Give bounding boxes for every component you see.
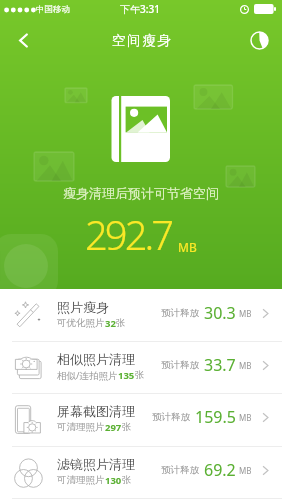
- staticText: 滤镜照片清理: [57, 456, 135, 472]
- staticText: 张: [122, 474, 132, 486]
- staticText: 屏幕截图清理: [57, 403, 135, 419]
- staticText: 可优化照片: [57, 317, 105, 329]
- staticText: 中国移动: [36, 4, 70, 15]
- staticText: 69.2: [204, 459, 236, 481]
- staticText: 张: [135, 369, 145, 381]
- button[interactable]: 相似照片清理: [0, 341, 282, 393]
- button[interactable]: Storage chart: [242, 23, 276, 57]
- staticText: 预计释放: [152, 411, 190, 423]
- staticText: 135: [118, 369, 135, 382]
- button[interactable]: 照片瘦身: [0, 289, 282, 341]
- staticText: 33.7: [204, 354, 236, 376]
- staticText: 159.5: [195, 406, 236, 428]
- staticText: 相似照片清理: [57, 351, 135, 367]
- staticText: 预计释放: [161, 359, 199, 371]
- staticText: MB: [239, 308, 252, 319]
- staticText: 相似/连拍照片: [57, 369, 118, 382]
- staticText: 292.7: [85, 207, 172, 261]
- staticText: MB: [239, 360, 252, 371]
- staticText: 32: [105, 317, 116, 330]
- staticText: MB: [239, 465, 252, 476]
- staticText: 30.3: [204, 302, 236, 324]
- staticText: 张: [116, 317, 126, 329]
- staticText: 可清理照片: [57, 474, 105, 486]
- button[interactable]: 滤镜照片清理: [0, 446, 282, 498]
- button[interactable]: 屏幕截图清理: [0, 393, 282, 445]
- staticText: MB: [239, 412, 252, 423]
- staticText: 照片瘦身: [57, 299, 109, 315]
- staticText: 瘦身清理后预计可节省空间: [63, 185, 219, 201]
- staticText: 预计释放: [161, 464, 199, 476]
- button[interactable]: Back: [6, 23, 40, 57]
- staticText: 130: [105, 474, 122, 487]
- staticText: 可清理照片: [57, 421, 105, 433]
- staticText: 预计释放: [161, 307, 199, 319]
- staticText: 空间瘦身: [112, 32, 173, 49]
- staticText: 张: [122, 421, 132, 433]
- staticText: 下午3:31: [120, 2, 160, 16]
- staticText: MB: [178, 239, 197, 255]
- staticText: 297: [105, 421, 122, 434]
